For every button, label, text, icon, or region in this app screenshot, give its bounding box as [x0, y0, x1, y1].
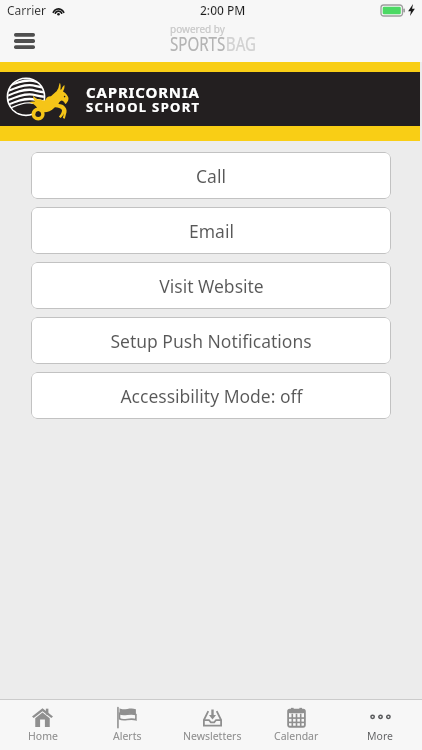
- button[interactable]: Accessibility Mode: off: [31, 372, 391, 419]
- button[interactable]: Alerts: [85, 700, 170, 750]
- staticText: Calendar: [274, 729, 319, 743]
- staticText: Accessibility Mode: off: [120, 384, 303, 408]
- staticText: CAPRICORNIA: [86, 82, 200, 102]
- staticText: Alerts: [113, 729, 142, 743]
- staticText: powered by: [170, 21, 225, 36]
- button[interactable]: Email: [31, 207, 391, 254]
- staticText: Setup Push Notifications: [110, 329, 312, 353]
- staticText: SPORTS: [170, 30, 226, 57]
- staticText: Home: [28, 729, 58, 743]
- button[interactable]: Visit Website: [31, 262, 391, 309]
- button[interactable]: Menu: [5, 22, 43, 60]
- staticText: 2:00 PM: [200, 2, 246, 18]
- button[interactable]: Home: [0, 700, 85, 750]
- staticText: Call: [196, 164, 226, 188]
- staticText: Carrier: [7, 2, 47, 18]
- staticText: Newsletters: [183, 729, 242, 743]
- button[interactable]: More: [338, 700, 422, 750]
- staticText: More: [367, 729, 393, 743]
- staticText: SCHOOL SPORT: [86, 98, 201, 116]
- button[interactable]: Setup Push Notifications: [31, 317, 391, 364]
- button[interactable]: Newsletters: [170, 700, 254, 750]
- button[interactable]: Call: [31, 152, 391, 199]
- button[interactable]: Calendar: [254, 700, 338, 750]
- staticText: Visit Website: [159, 274, 264, 298]
- staticText: BAG: [226, 30, 256, 57]
- staticText: Email: [189, 219, 234, 243]
